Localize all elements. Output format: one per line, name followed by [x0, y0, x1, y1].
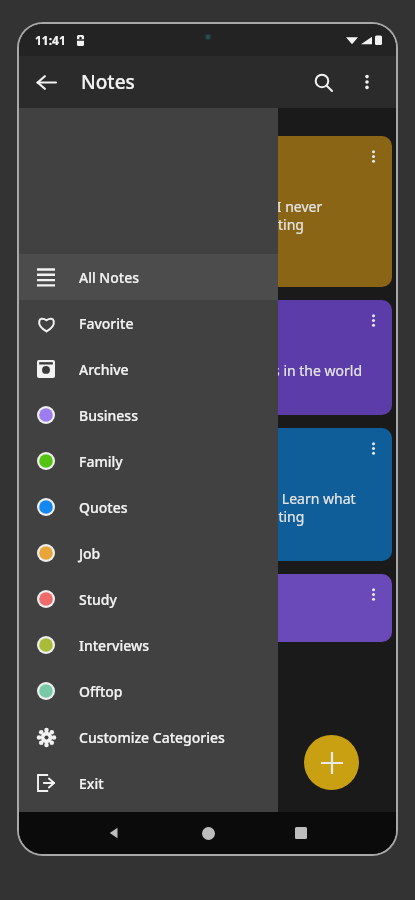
staticText: Be Lovely [36, 583, 122, 608]
button[interactable]: Back [25, 61, 67, 103]
staticText: Study [79, 590, 117, 609]
button[interactable]: Quotes [19, 484, 278, 530]
button[interactable]: Archive [19, 346, 278, 392]
staticText: Tuesday, August 23, 2022 [36, 533, 191, 551]
button[interactable]: The Statue of Liberty [23, 300, 392, 415]
staticText: Family [79, 452, 123, 471]
staticText: Offtop [79, 682, 123, 701]
button[interactable]: Family [19, 438, 278, 484]
button[interactable]: Job [19, 530, 278, 576]
staticText: Exit [79, 774, 104, 793]
button[interactable]: All Notes [19, 254, 278, 300]
button[interactable]: More options [346, 61, 388, 103]
button[interactable]: Be Lovely [23, 574, 392, 642]
button[interactable]: Exit [19, 760, 278, 806]
staticText: 11:41 [35, 32, 66, 48]
staticText: Customize Categories [79, 728, 225, 747]
button[interactable]: Home [185, 812, 231, 854]
button[interactable]: Add note [304, 735, 359, 790]
staticText: Favorite [79, 314, 134, 333]
staticText: Job [79, 544, 101, 563]
button[interactable]: Note options [362, 437, 384, 459]
button[interactable]: Note options [362, 145, 384, 167]
button[interactable]: Happy Diwali Greeting. [23, 136, 392, 287]
button[interactable]: Note options [362, 309, 384, 331]
button[interactable]: Study [19, 576, 278, 622]
button[interactable]: Interviews [19, 622, 278, 668]
staticText: The Statue of Liberty [36, 309, 156, 356]
button[interactable]: Recents [278, 812, 324, 854]
staticText: Quotes [79, 498, 128, 517]
staticText: Archive [79, 360, 129, 379]
button[interactable]: Customize Categories [19, 714, 278, 760]
button[interactable]: Offtop [19, 668, 278, 714]
staticText: Business [79, 406, 138, 425]
staticText: Thursday, August 4, 2022 [36, 259, 190, 277]
button[interactable]: Business [19, 392, 278, 438]
button[interactable]: Note options [362, 583, 384, 605]
button[interactable]: Search [302, 61, 344, 103]
button[interactable]: Business Leadership [23, 428, 392, 561]
button[interactable]: Favorite [19, 300, 278, 346]
staticText: Business Leadership [36, 437, 136, 484]
button[interactable]: Back [91, 812, 137, 854]
staticText: Hello, Did you know that I loved and I n… [36, 197, 362, 252]
staticText: All Notes [79, 268, 139, 287]
staticText: Interviews [79, 636, 150, 655]
staticText: The key to understand how you lead. Lear… [36, 489, 362, 526]
staticText: One of the most famous monuments in the … [36, 361, 362, 380]
staticText: Notes [81, 69, 135, 95]
